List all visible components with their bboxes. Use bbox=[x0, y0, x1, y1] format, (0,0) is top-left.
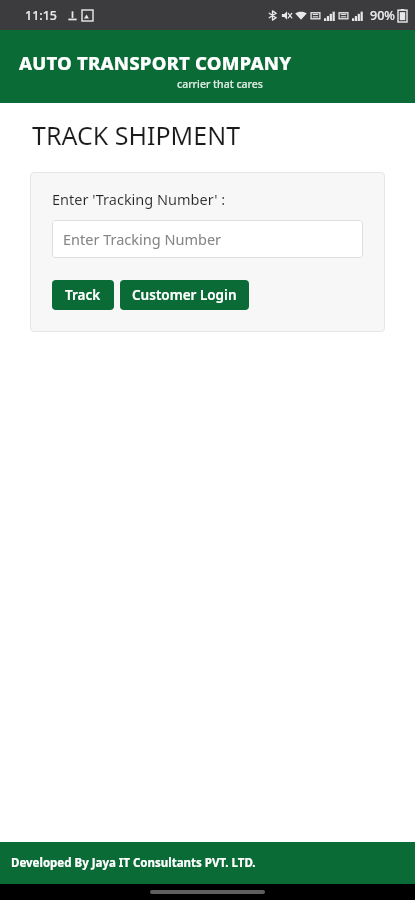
staticText: 11:15 bbox=[25, 7, 58, 24]
staticText: AUTO TRANSPORT COMPANY bbox=[19, 50, 292, 75]
staticText: Enter 'Tracking Number' : bbox=[52, 189, 226, 209]
staticText: TRACK SHIPMENT bbox=[32, 118, 241, 152]
staticText: Developed By Jaya IT Consultants PVT. LT… bbox=[11, 855, 256, 871]
staticText: 90% bbox=[370, 7, 395, 24]
staticText: Enter Tracking Number bbox=[63, 229, 222, 249]
button[interactable]: Customer Login bbox=[120, 280, 249, 310]
button[interactable]: Track bbox=[52, 280, 114, 310]
staticText: Track bbox=[65, 286, 101, 304]
staticText: Customer Login bbox=[132, 286, 237, 304]
button[interactable]: AUTO TRANSPORT COMPANY bbox=[0, 30, 415, 103]
staticText: carrier that cares bbox=[177, 77, 263, 91]
button[interactable]: Enter Tracking Number bbox=[52, 220, 363, 258]
other: Home gesture bar bbox=[150, 890, 265, 894]
button[interactable]: Developed By Jaya IT Consultants PVT. LT… bbox=[0, 842, 415, 884]
